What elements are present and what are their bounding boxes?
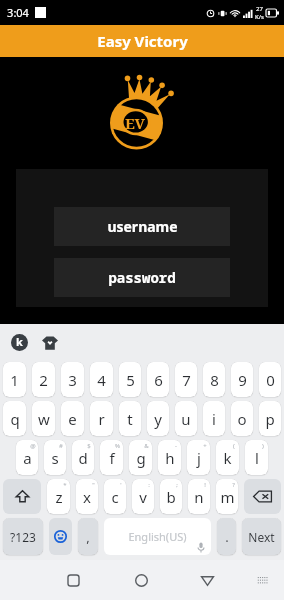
staticText: $ [87,442,91,450]
staticText: . [225,528,229,546]
staticText: e [68,409,77,429]
button[interactable]: Back [190,563,224,597]
button[interactable]: Next [242,518,281,555]
button[interactable]: d [72,440,94,475]
staticText: 6 [154,370,163,390]
button[interactable]: s [44,440,66,475]
staticText: d [78,448,88,468]
staticText: ? [232,481,235,489]
button[interactable]: e [61,401,84,436]
staticText: Easy Victory [97,31,188,51]
staticText: 7 [182,370,191,390]
staticText: r [98,409,105,429]
staticText: h [165,448,175,468]
staticText: m [220,487,235,507]
staticText: c [111,487,119,507]
staticText: : [148,481,150,489]
button[interactable]: Recents [56,563,90,597]
staticText: % [115,442,120,450]
button[interactable]: t [119,401,141,436]
button[interactable]: n [188,479,210,514]
staticText: 4 [97,370,106,390]
button[interactable]: 8 [203,362,225,397]
button[interactable]: 3 [61,362,84,397]
button[interactable]: , [78,518,98,555]
button[interactable]: 7 [175,362,197,397]
staticText: 0 [266,370,275,390]
button[interactable]: o [231,401,253,436]
button[interactable]: z [47,479,70,514]
staticText: o [237,409,247,429]
button[interactable]: Home [124,563,158,597]
button[interactable]: Hide keyboard [246,563,280,597]
staticText: K/s [255,13,264,21]
button[interactable]: 1 [3,362,26,397]
staticText: 27 [256,5,263,13]
button[interactable]: username [54,207,230,246]
button[interactable]: . [217,518,236,555]
button[interactable]: g [129,440,152,475]
staticText: 9 [238,370,247,390]
button[interactable]: 6 [147,362,169,397]
staticText: b [166,487,176,507]
button[interactable]: English(US) [104,518,211,555]
staticText: ) [262,442,264,450]
button[interactable]: Backspace [244,479,281,514]
staticText: v [139,487,147,507]
staticText: n [194,487,204,507]
button[interactable]: 0 [259,362,281,397]
staticText: ?123 [10,529,36,545]
staticText: u [181,409,191,429]
staticText: ! [204,481,206,489]
button[interactable]: y [147,401,169,436]
button[interactable]: Keyboard settings [11,334,28,351]
button[interactable]: Emoji [49,518,72,555]
staticText: q [10,409,20,429]
button[interactable]: ?123 [3,518,43,555]
staticText: j [197,448,201,468]
staticText: y [154,409,162,429]
staticText: 2 [39,370,48,390]
staticText: 8 [210,370,219,390]
button[interactable]: 5 [119,362,141,397]
staticText: password [108,268,176,287]
button[interactable]: f [100,440,123,475]
button[interactable]: q [3,401,26,436]
button[interactable]: c [104,479,126,514]
staticText: w [38,409,50,429]
staticText: s [51,448,59,468]
button[interactable]: v [132,479,154,514]
staticText: ' [120,481,122,489]
button[interactable]: password [54,258,230,297]
button[interactable]: Stickers [41,334,58,351]
button[interactable]: u [175,401,197,436]
button[interactable]: Shift [3,479,41,514]
button[interactable]: m [216,479,238,514]
button[interactable]: r [90,401,113,436]
button[interactable]: p [259,401,281,436]
button[interactable]: l [245,440,268,475]
staticText: * [63,481,67,489]
button[interactable]: b [160,479,182,514]
staticText: " [92,481,95,489]
staticText: , [86,528,90,546]
staticText: ; [176,481,178,489]
button[interactable]: Easy Victory [0,25,284,57]
button[interactable]: h [158,440,181,475]
staticText: k [223,448,232,468]
staticText: 3:04 [7,5,29,20]
button[interactable]: i [203,401,225,436]
button[interactable]: 9 [231,362,253,397]
button[interactable]: x [76,479,98,514]
button[interactable]: k [216,440,239,475]
staticText: t [127,409,133,429]
staticText: + [203,442,207,450]
button[interactable]: w [32,401,55,436]
button[interactable]: 2 [32,362,55,397]
button[interactable]: j [187,440,210,475]
staticText: 5 [126,370,135,390]
button[interactable]: 4 [90,362,113,397]
staticText: Next [248,529,275,545]
button[interactable]: a [16,440,38,475]
staticText: l [255,448,259,468]
